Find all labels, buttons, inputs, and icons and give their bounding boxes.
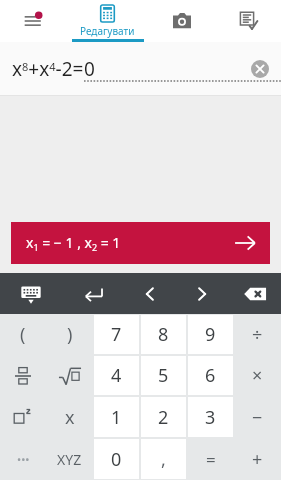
staticText: 8 [158,322,169,347]
staticText: ( [20,322,26,347]
button[interactable]: Next [176,273,228,314]
staticText: 0 [111,447,122,472]
button[interactable]: , [141,439,186,479]
staticText: 6 [205,363,216,388]
button[interactable]: ) [47,315,92,354]
button[interactable]: History [0,0,66,42]
button[interactable]: = [188,439,233,479]
button[interactable]: − [235,397,280,437]
staticText: 3 [205,405,216,430]
staticText: = [206,448,216,471]
button[interactable]: Tasks [215,0,281,42]
staticText: ÷ [252,322,263,347]
button[interactable]: 3 [188,397,233,437]
staticText: Редагувати [80,24,135,38]
button[interactable]: 7 [94,315,139,354]
button[interactable]: + [235,439,280,479]
button[interactable]: Редагувати [66,0,149,42]
button[interactable]: Hide keyboard [0,273,62,314]
button[interactable]: 9 [188,315,233,354]
button[interactable]: sq [1,397,45,437]
staticText: − [252,405,263,430]
button[interactable]: 2 [141,397,186,437]
button[interactable]: 1 [94,397,139,437]
button[interactable]: XYZ [47,439,92,479]
staticText: ) [67,322,73,347]
staticText: 1 [111,405,122,430]
staticText: 5 [158,363,169,388]
button[interactable]: 6 [188,356,233,395]
button[interactable]: Clear [251,60,269,78]
button[interactable]: 8 [141,315,186,354]
button[interactable]: × [235,356,280,395]
button[interactable]: ( [1,315,45,354]
staticText: x1 = − 1 , x2 = 1 [26,233,121,253]
button[interactable]: x1 = − 1 , x2 = 1 [11,222,270,264]
button[interactable]: Backspace [228,273,281,314]
button[interactable]: ÷ [235,315,280,354]
button[interactable]: x [47,397,92,437]
button[interactable]: … [1,439,45,479]
staticText: + [252,447,263,472]
button[interactable]: 4 [94,356,139,395]
button[interactable]: Previous [124,273,176,314]
staticText: 9 [205,322,216,347]
staticText: ••• [17,452,30,467]
button[interactable]: 0 [94,439,139,479]
staticText: 7 [111,322,122,347]
staticText: , [161,447,166,472]
button[interactable]: 5 [141,356,186,395]
button[interactable]: sqrt [47,356,92,395]
staticText: 2 [158,405,169,430]
staticText: 4 [111,363,122,388]
staticText: × [252,363,263,388]
staticText: x8+x4-2= [12,56,84,82]
button[interactable]: Enter [62,273,124,314]
staticText: 0 [84,56,95,82]
staticText: XYZ [57,450,82,469]
staticText: x [65,405,75,430]
button[interactable]: frac [1,356,45,395]
button[interactable]: Camera [149,0,215,42]
